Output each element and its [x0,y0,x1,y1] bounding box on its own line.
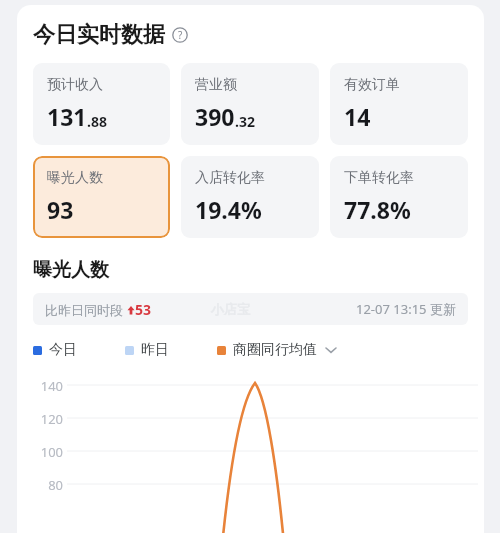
button[interactable]: 营业额 [181,63,319,145]
staticText: 100 [17,443,63,458]
button[interactable]: 曝光人数 [33,156,170,238]
button[interactable]: 有效订单 [330,63,468,145]
button[interactable]: 比昨日同时段 [33,293,468,325]
staticText: 小店宝 [211,301,250,317]
staticText: 曝光人数 [47,169,103,187]
staticText: 12-07 13:15 更新 [356,300,456,318]
button[interactable]: 商圈同行均值 [217,341,337,359]
staticText: 131 [47,101,87,132]
button[interactable]: 预计收入 [33,63,170,145]
staticText: 预计收入 [47,76,103,94]
staticText: 77.8% [344,194,411,225]
staticText: 390 [195,101,235,132]
staticText: 昨日 [141,341,169,359]
staticText: ? [178,28,183,42]
staticText: 有效订单 [344,76,400,94]
button[interactable]: 今日实时数据 [33,21,188,49]
staticText: 120 [17,410,63,425]
staticText: 93 [47,194,74,225]
staticText: 曝光人数 [33,258,109,282]
staticText: .32 [235,112,255,131]
button[interactable]: 入店转化率 [181,156,319,238]
staticText: 14 [344,101,371,132]
other: 展开选项 [325,346,337,354]
button[interactable]: 帮助说明 [172,27,188,43]
staticText: 140 [17,377,63,392]
staticText: 入店转化率 [195,169,265,187]
staticText: 下单转化率 [344,169,414,187]
staticText: 营业额 [195,76,237,94]
staticText: 比昨日同时段 [45,301,127,319]
staticText: 今日 [49,341,77,359]
button[interactable]: 下单转化率 [330,156,468,238]
staticText: 商圈同行均值 [233,341,317,359]
staticText: 53 [135,300,152,319]
staticText: 今日实时数据 [33,21,165,49]
staticText: 19.4% [195,194,262,225]
staticText: .88 [87,112,107,131]
staticText: 80 [17,476,63,491]
